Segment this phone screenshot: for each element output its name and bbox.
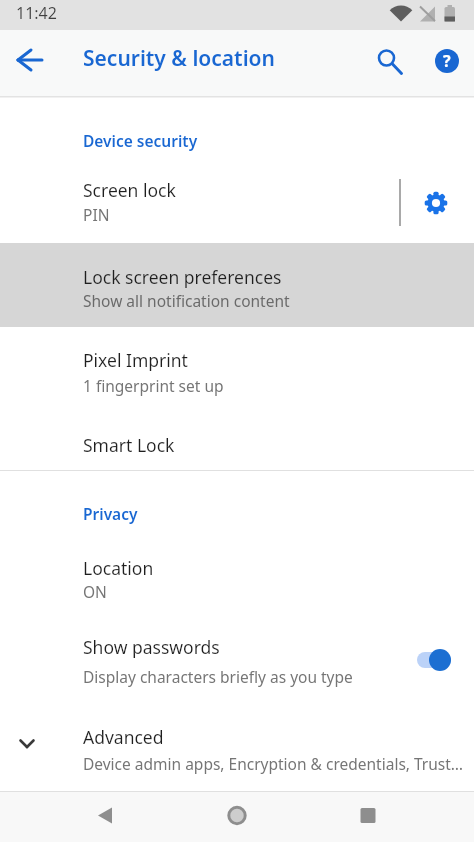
button[interactable] bbox=[85, 796, 125, 836]
staticText: Device security bbox=[83, 130, 198, 151]
button[interactable] bbox=[0, 705, 474, 791]
button[interactable] bbox=[416, 183, 456, 223]
staticText: Show all notification content bbox=[83, 290, 290, 311]
staticText: Smart Lock bbox=[83, 433, 175, 457]
button[interactable] bbox=[10, 40, 50, 80]
staticText: 11:42 bbox=[16, 2, 57, 24]
staticText: Device admin apps, Encryption & credenti… bbox=[83, 753, 464, 774]
staticText: Show passwords bbox=[83, 635, 220, 659]
staticText: PIN bbox=[83, 204, 110, 225]
button[interactable] bbox=[0, 160, 398, 236]
button[interactable] bbox=[217, 796, 257, 836]
staticText: Display characters briefly as you type bbox=[83, 666, 353, 687]
button[interactable] bbox=[0, 410, 474, 470]
button[interactable] bbox=[0, 243, 474, 327]
staticText: ? bbox=[443, 50, 451, 72]
button[interactable] bbox=[367, 38, 407, 78]
button[interactable] bbox=[0, 535, 474, 610]
staticText: Location bbox=[83, 556, 154, 580]
button[interactable] bbox=[0, 615, 474, 695]
staticText: Lock screen preferences bbox=[83, 265, 282, 289]
staticText: Security & location bbox=[83, 44, 275, 73]
button[interactable]: ? bbox=[435, 49, 459, 73]
staticText: Screen lock bbox=[83, 178, 176, 202]
staticText: Advanced bbox=[83, 725, 164, 749]
button[interactable] bbox=[0, 327, 474, 410]
staticText: Privacy bbox=[83, 503, 138, 524]
staticText: 1 fingerprint set up bbox=[83, 375, 224, 396]
staticText: Pixel Imprint bbox=[83, 348, 188, 372]
button[interactable] bbox=[348, 796, 388, 836]
staticText: ON bbox=[83, 581, 107, 602]
